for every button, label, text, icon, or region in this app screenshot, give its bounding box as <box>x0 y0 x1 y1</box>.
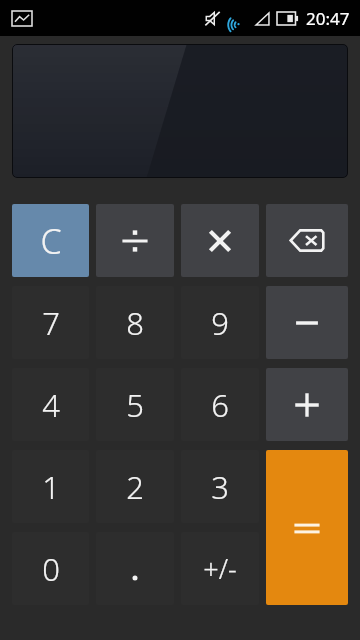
button[interactable]: 6 <box>181 368 259 441</box>
staticText: 0 <box>42 548 60 590</box>
button[interactable]: 2 <box>96 450 174 523</box>
button[interactable]: +/- <box>181 532 259 605</box>
staticText: 3 <box>211 466 229 508</box>
staticText: 6 <box>211 384 229 426</box>
button[interactable]: 3 <box>181 450 259 523</box>
other: Backspace <box>290 229 324 252</box>
staticText: 4 <box>42 384 60 426</box>
staticText: 7 <box>42 302 60 344</box>
button[interactable]: 8 <box>96 286 174 359</box>
button[interactable]: Decimal point <box>96 532 174 605</box>
staticText: C <box>40 218 62 264</box>
button[interactable]: Equals <box>266 450 348 605</box>
other: Minus <box>294 310 320 336</box>
button[interactable]: Backspace <box>266 204 348 277</box>
other: Divide <box>120 226 150 256</box>
staticText: 9 <box>211 302 229 344</box>
staticText: 2 <box>126 466 144 508</box>
button[interactable]: 9 <box>181 286 259 359</box>
button[interactable]: 4 <box>12 368 89 441</box>
staticText: +/- <box>203 550 237 587</box>
staticText: 20:47 <box>306 7 350 30</box>
button[interactable]: 0 <box>12 532 89 605</box>
button[interactable]: 5 <box>96 368 174 441</box>
other: Multiply <box>207 228 233 254</box>
button[interactable]: Multiply <box>181 204 259 277</box>
other: Plus <box>293 391 321 419</box>
other: Equals <box>293 518 321 538</box>
button[interactable]: 1 <box>12 450 89 523</box>
staticText: 1 <box>42 466 60 508</box>
staticText: 5 <box>126 384 144 426</box>
button[interactable]: C <box>12 204 89 277</box>
button[interactable]: 7 <box>12 286 89 359</box>
button[interactable]: Divide <box>96 204 174 277</box>
button[interactable]: Plus <box>266 368 348 441</box>
button[interactable]: Minus <box>266 286 348 359</box>
staticText: 8 <box>126 302 144 344</box>
other: Decimal point <box>123 554 147 584</box>
